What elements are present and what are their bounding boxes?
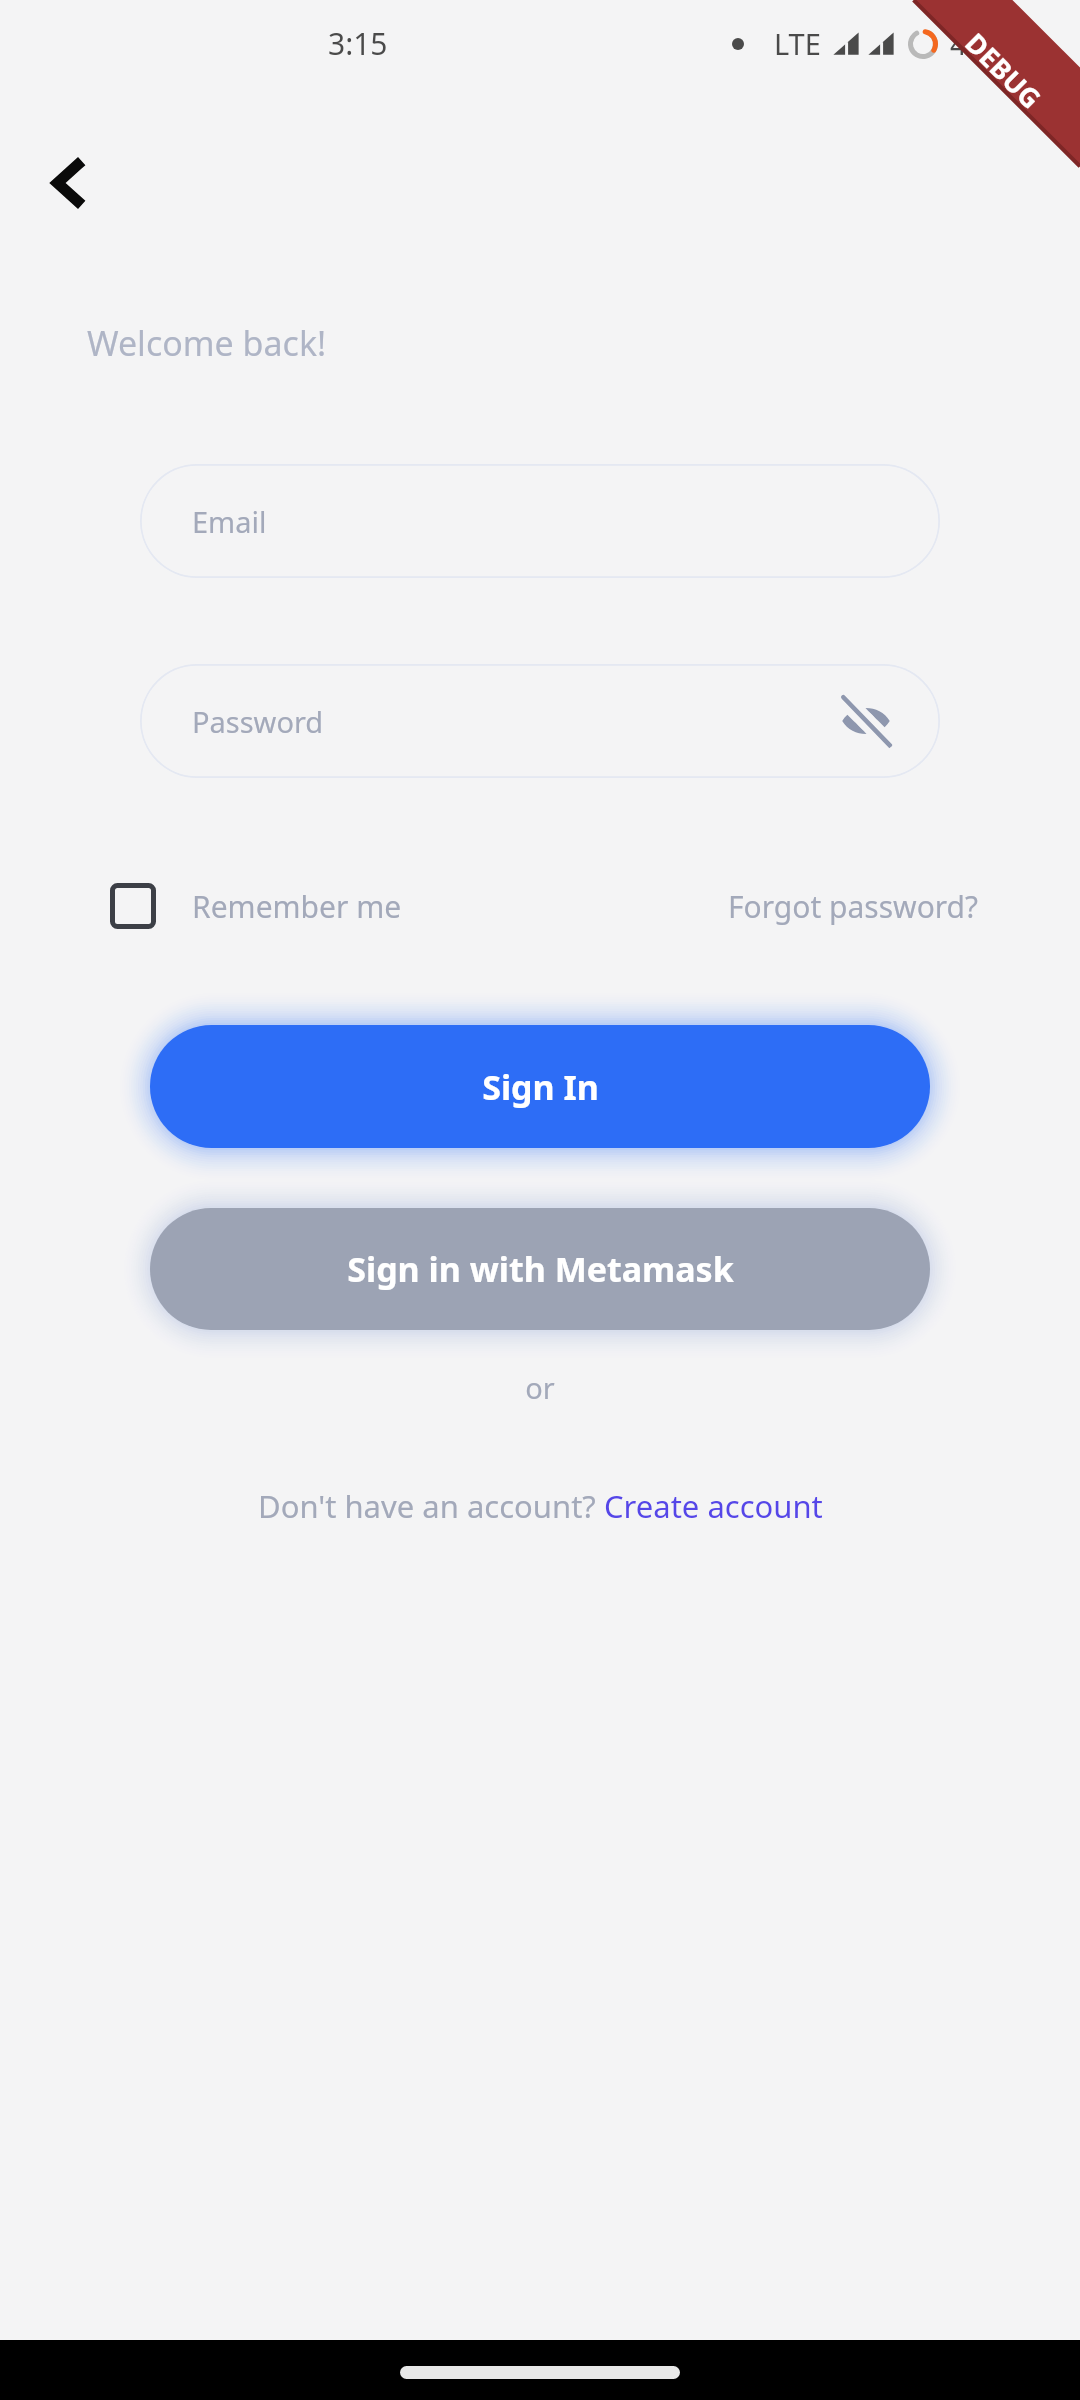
staticText: 3:15 [328,23,388,64]
staticText: Email [192,502,267,541]
staticText: 40% [950,24,1008,63]
staticText: Sign in with Metamask [347,1246,734,1292]
button[interactable]: Email [140,464,940,578]
staticText: or [525,1368,555,1407]
button[interactable]: Show password [830,685,902,757]
button[interactable]: Remember me [105,875,407,937]
staticText: Sign In [482,1064,599,1110]
button[interactable]: Password [140,664,940,778]
staticText: Password [192,702,324,741]
staticText: LTE [774,24,821,63]
button[interactable]: Sign in with Metamask [150,1208,930,1330]
button[interactable]: Forgot password? [722,878,985,935]
staticText: Forgot password? [728,886,979,927]
staticText: DEBUG [957,24,1049,116]
staticText: Welcome back! [87,320,327,366]
staticText: Remember me [192,886,402,927]
staticText: Create account [604,1485,823,1527]
button[interactable]: Back [24,138,114,228]
staticText: Don't have an account? [258,1485,604,1527]
button[interactable]: Create account [604,1485,823,1527]
button[interactable]: Sign In [150,1025,930,1148]
